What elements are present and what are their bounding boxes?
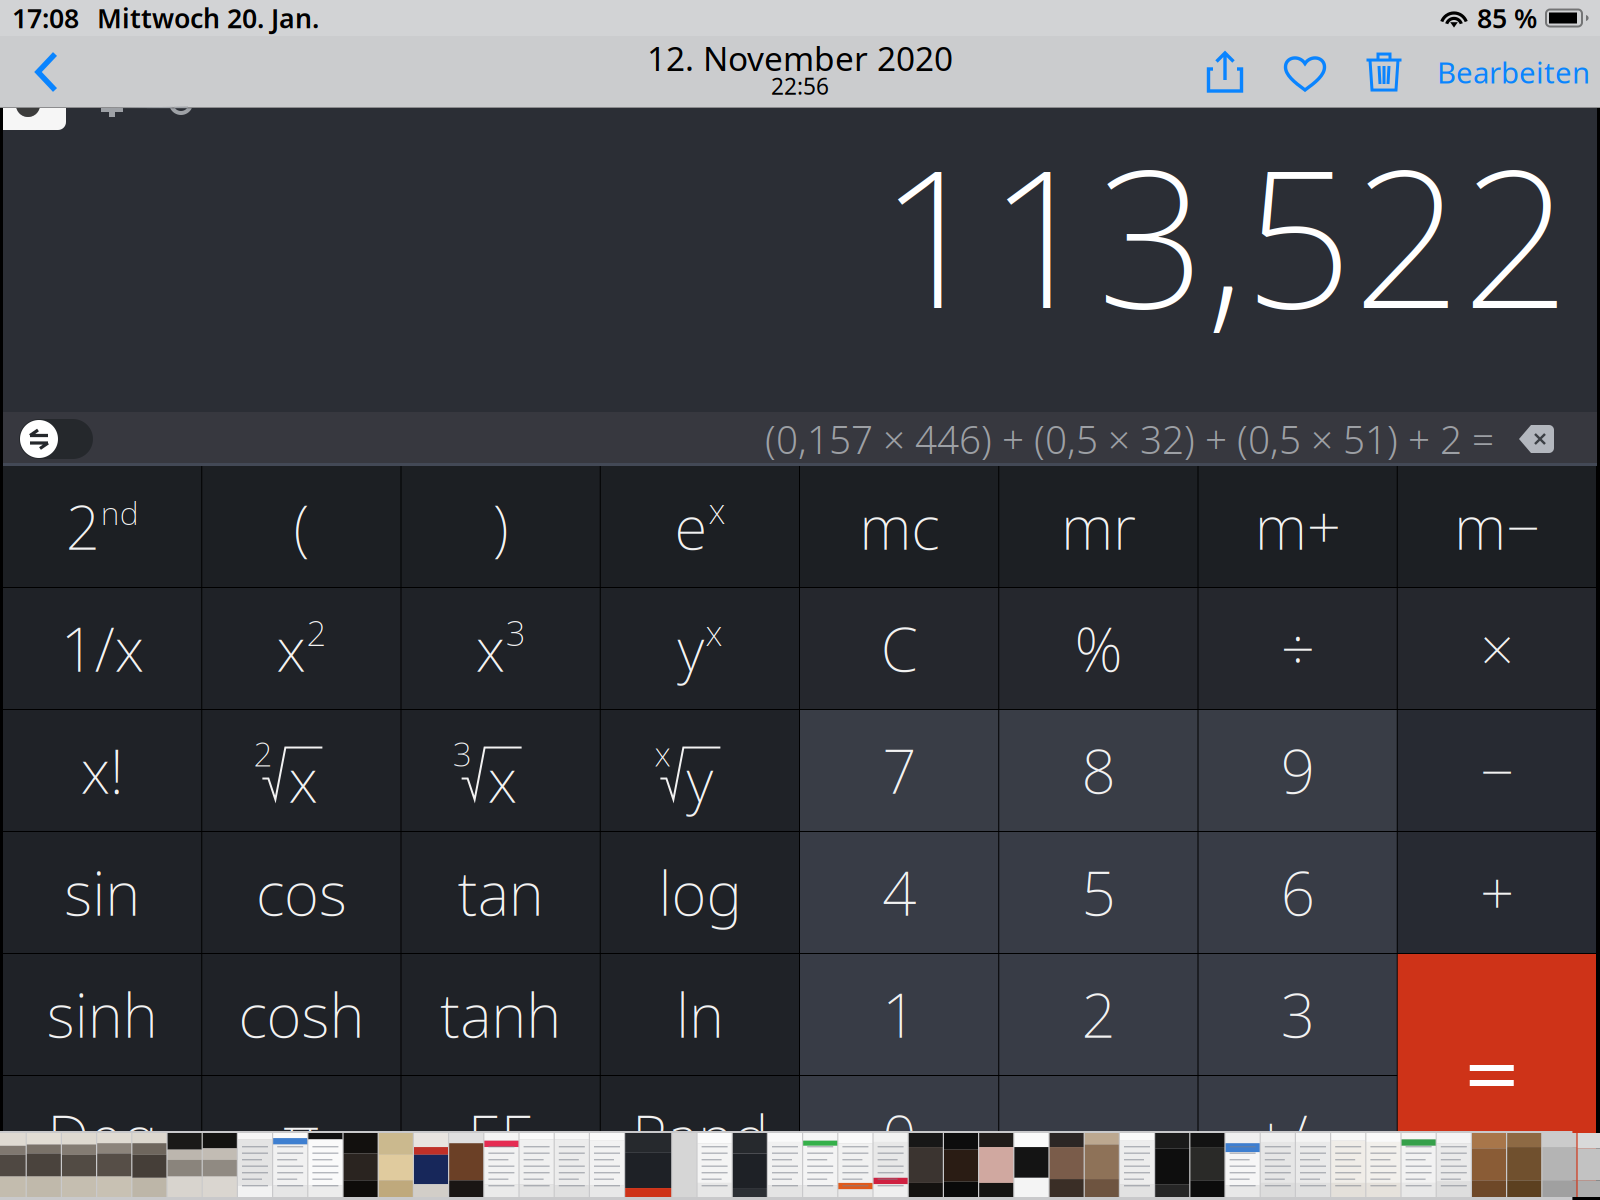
button[interactable]: × (1398, 588, 1596, 709)
button[interactable]: Foto 32 (1050, 1133, 1084, 1197)
button[interactable]: 7 (800, 710, 998, 831)
button[interactable]: Foto 34 (1120, 1133, 1154, 1197)
button[interactable]: Foto 25 (803, 1133, 837, 1197)
button[interactable]: tan (401, 832, 600, 953)
button[interactable]: cos (202, 832, 400, 953)
button[interactable]: Foto 6 (132, 1133, 166, 1197)
button[interactable]: Foto 42 (1402, 1133, 1436, 1197)
button[interactable]: 9 (1198, 710, 1397, 831)
button[interactable]: Foto 3 (27, 1133, 61, 1197)
button[interactable]: e (601, 466, 799, 587)
button[interactable]: Foto 35 (1155, 1133, 1189, 1197)
button[interactable]: Foto 23 (733, 1133, 767, 1197)
button[interactable]: 3 (401, 710, 600, 831)
button[interactable]: + (1398, 832, 1596, 953)
button[interactable]: ÷ (1198, 588, 1397, 709)
button[interactable]: Foto 29 (944, 1133, 978, 1197)
button[interactable]: Foto 39 (1296, 1133, 1330, 1197)
button[interactable]: Foto 44 (1472, 1133, 1506, 1197)
button[interactable]: Foto 11 (308, 1133, 342, 1197)
button[interactable]: 2 (202, 710, 400, 831)
button[interactable]: Foto 5 (97, 1133, 131, 1197)
button[interactable]: Foto 28 (909, 1133, 943, 1197)
button[interactable]: Foto 22 (698, 1133, 732, 1197)
button[interactable]: Foto 16 (484, 1133, 518, 1197)
button[interactable]: Foto 40 (1331, 1133, 1365, 1197)
button[interactable]: m− (1398, 466, 1596, 587)
button[interactable]: ( (202, 466, 400, 587)
button[interactable]: Foto 4 (62, 1133, 96, 1197)
button[interactable] (1398, 954, 1596, 1075)
button[interactable]: Foto 13 (379, 1133, 413, 1197)
button[interactable]: Wissenschaftlich (19, 419, 93, 459)
button[interactable]: π (202, 1076, 400, 1197)
button[interactable]: sin (3, 832, 201, 953)
button[interactable] (1398, 1076, 1596, 1197)
button[interactable]: Foto 46 (1542, 1133, 1576, 1197)
button[interactable]: sinh (3, 954, 201, 1075)
button[interactable]: Foto 30 (979, 1133, 1013, 1197)
button[interactable]: Teilen (1185, 51, 1267, 93)
button[interactable]: Foto 14 (414, 1133, 448, 1197)
button[interactable]: Foto 19 (590, 1133, 624, 1197)
button[interactable]: Foto 12 (344, 1133, 378, 1197)
button[interactable]: Foto 24 (768, 1133, 802, 1197)
button[interactable]: Foto 45 (1507, 1133, 1541, 1197)
button[interactable]: Foto 18 (555, 1133, 589, 1197)
button[interactable]: % (999, 588, 1197, 709)
button[interactable]: x! (3, 710, 201, 831)
button[interactable]: ln (601, 954, 799, 1075)
button[interactable]: Foto 7 (168, 1133, 202, 1197)
button[interactable]: cosh (202, 954, 400, 1075)
button[interactable]: Foto 2 (0, 1133, 26, 1197)
button[interactable]: EE (401, 1076, 600, 1197)
button[interactable]: Deg (3, 1076, 201, 1197)
button[interactable]: Foto 38 (1261, 1133, 1295, 1197)
button[interactable]: 2 (999, 954, 1197, 1075)
button[interactable]: 3 (1198, 954, 1397, 1075)
button[interactable]: Rückschritt (1494, 425, 1597, 453)
button[interactable]: 5 (999, 832, 1197, 953)
button[interactable]: Foto 15 (449, 1133, 483, 1197)
button[interactable]: 8 (999, 710, 1197, 831)
button[interactable]: Bearbeiten (1411, 46, 1590, 98)
button[interactable]: Foto 26 (838, 1133, 872, 1197)
button[interactable]: Foto 41 (1366, 1133, 1400, 1197)
button[interactable]: m+ (1198, 466, 1397, 587)
button[interactable]: Foto 17 (520, 1133, 554, 1197)
button[interactable]: Foto 47 (1578, 1133, 1600, 1197)
button[interactable]: x (601, 710, 799, 831)
button[interactable]: 1/x (3, 588, 201, 709)
button[interactable]: Foto 27 (874, 1133, 908, 1197)
button[interactable]: ) (401, 466, 600, 587)
button[interactable]: tanh (401, 954, 600, 1075)
button[interactable]: Foto 10 (273, 1133, 307, 1197)
button[interactable]: Foto 37 (1226, 1133, 1260, 1197)
button[interactable]: Favorit (1267, 51, 1343, 93)
button[interactable]: Foto 20 (625, 1133, 671, 1197)
button[interactable]: Rand (601, 1076, 799, 1197)
button[interactable]: Foto 31 (1014, 1133, 1048, 1197)
button[interactable]: Zurück (16, 51, 77, 93)
button[interactable]: x (401, 588, 600, 709)
button[interactable]: Foto 8 (203, 1133, 237, 1197)
button[interactable]: Foto 36 (1190, 1133, 1224, 1197)
button[interactable]: Löschen (1343, 51, 1411, 93)
button[interactable]: 1 (800, 954, 998, 1075)
button[interactable]: +/− (1198, 1076, 1397, 1197)
button[interactable]: log (601, 832, 799, 953)
button[interactable]: x (202, 588, 400, 709)
button[interactable]: 6 (1198, 832, 1397, 953)
button[interactable]: 4 (800, 832, 998, 953)
button[interactable]: 2 (3, 466, 201, 587)
button[interactable]: Foto 9 (238, 1133, 272, 1197)
button[interactable]: C (800, 588, 998, 709)
button[interactable]: mc (800, 466, 998, 587)
button[interactable]: y (601, 588, 799, 709)
button[interactable]: . (999, 1076, 1197, 1197)
button[interactable]: Foto 43 (1437, 1133, 1471, 1197)
button[interactable]: mr (999, 466, 1197, 587)
button[interactable]: − (1398, 710, 1596, 831)
button[interactable]: Foto 33 (1085, 1133, 1119, 1197)
